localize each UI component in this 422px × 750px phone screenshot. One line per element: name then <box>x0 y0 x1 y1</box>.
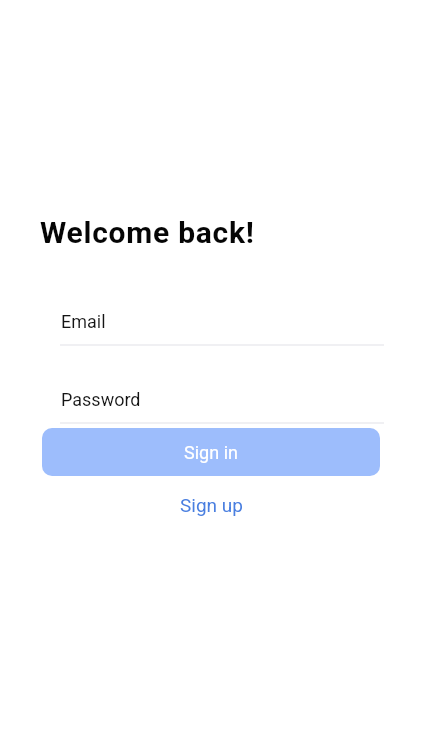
button[interactable] <box>60 378 384 424</box>
button[interactable]: Sign up <box>0 488 422 522</box>
staticText: Sign up <box>180 494 243 516</box>
button[interactable]: Sign in <box>42 428 380 476</box>
staticText: Email <box>61 311 106 332</box>
staticText: Welcome back! <box>40 215 255 250</box>
staticText: Password <box>61 389 141 410</box>
staticText: Sign in <box>184 442 238 463</box>
button[interactable] <box>60 300 384 346</box>
